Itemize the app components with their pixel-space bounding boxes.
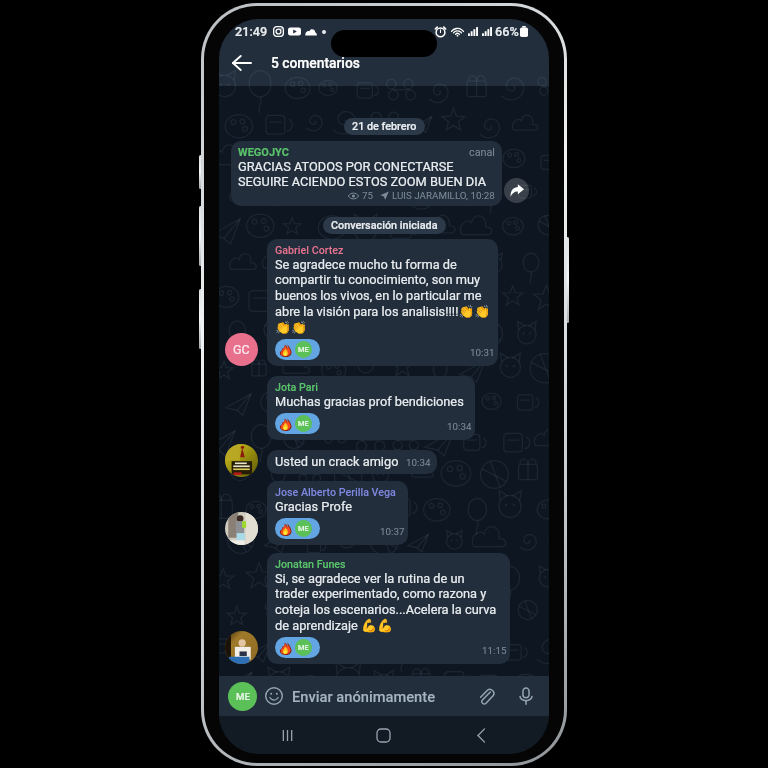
button[interactable]: ME xyxy=(275,413,320,434)
staticText: 10:31 xyxy=(470,347,495,358)
staticText: ME xyxy=(298,643,309,652)
staticText: 75 xyxy=(362,190,374,201)
button[interactable]: Profile GC xyxy=(225,333,258,366)
button[interactable]: Voice message xyxy=(514,684,538,708)
button[interactable]: Emoji xyxy=(262,684,286,708)
button[interactable]: Home xyxy=(335,716,432,754)
button[interactable]: Profile photo xyxy=(225,512,258,545)
staticText: Gracias Profe xyxy=(275,499,352,514)
staticText: 66% xyxy=(495,24,519,39)
staticText: canal xyxy=(469,146,495,159)
button[interactable]: Jonatan Funes xyxy=(267,553,510,664)
button[interactable]: Share xyxy=(504,178,529,203)
staticText: ME xyxy=(298,345,309,354)
staticText: 11:15 xyxy=(482,645,507,656)
staticText: ME xyxy=(298,524,309,533)
staticText: Conversación iniciada xyxy=(331,219,438,232)
button[interactable]: Usted un crack amigo xyxy=(267,450,437,474)
button[interactable]: Back xyxy=(219,41,263,85)
staticText: 10:34 xyxy=(406,457,431,468)
button[interactable]: Recent apps xyxy=(239,716,335,754)
staticText: Jose Alberto Perilla Vega xyxy=(275,486,396,499)
button[interactable]: ME xyxy=(275,518,320,539)
staticText: Jonatan Funes xyxy=(275,558,346,571)
button[interactable]: Profile photo xyxy=(225,631,258,664)
staticText: WEGOJYC xyxy=(238,146,289,159)
staticText: 10:37 xyxy=(380,526,405,537)
button[interactable]: Attach xyxy=(474,684,498,708)
button[interactable]: WEGOJYC xyxy=(231,141,502,206)
button[interactable]: ME xyxy=(275,339,320,360)
button[interactable]: Profile photo xyxy=(225,444,258,477)
staticText: Usted un crack amigo xyxy=(275,454,399,469)
staticText: 21:49 xyxy=(235,24,268,39)
staticText: SEGUIRE ACIENDO ESTOS ZOOM BUEN DIA xyxy=(238,174,487,189)
staticText: Se agradece mucho tu forma de compartir … xyxy=(275,257,491,335)
staticText: Enviar anónimamente xyxy=(292,688,436,705)
button[interactable]: Gabriel Cortez xyxy=(267,239,498,366)
staticText: Gabriel Cortez xyxy=(275,244,344,257)
staticText: Si, se agradece ver la rutina de un trad… xyxy=(275,571,497,633)
staticText: ME xyxy=(236,691,250,702)
staticText: 21 de febrero xyxy=(352,120,417,133)
button[interactable]: ME xyxy=(275,637,320,658)
button[interactable]: Conversación iniciada xyxy=(323,217,446,234)
staticText: ME xyxy=(298,419,309,428)
button[interactable]: Jose Alberto Perilla Vega xyxy=(267,481,408,545)
staticText: Jota Pari xyxy=(275,381,319,394)
button[interactable]: Jota Pari xyxy=(267,376,475,440)
staticText: 5 comentarios xyxy=(271,55,360,71)
button[interactable]: 21 de febrero xyxy=(344,118,425,135)
staticText: GRACIAS ATODOS POR CONECTARSE xyxy=(238,159,454,174)
button[interactable]: Anonymous profile xyxy=(228,682,257,711)
staticText: LUIS JARAMILLO, 10:28 xyxy=(392,190,495,201)
staticText: Muchas gracias prof bendiciones xyxy=(275,394,464,409)
staticText: 10:34 xyxy=(447,421,472,432)
staticText: GC xyxy=(233,342,250,357)
button[interactable]: Back xyxy=(432,716,529,754)
